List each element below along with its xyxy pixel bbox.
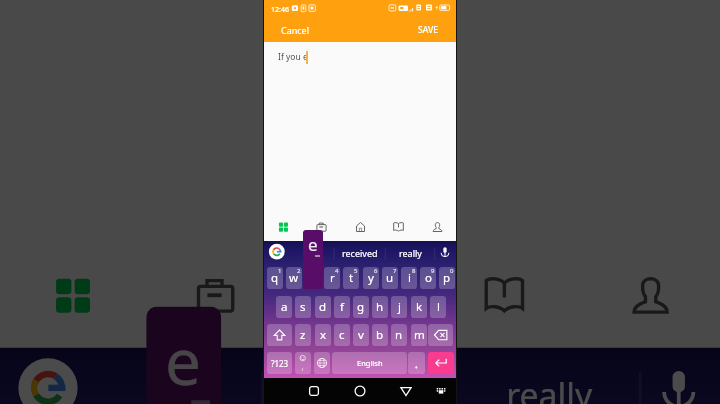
button[interactable]: Profile — [577, 243, 720, 340]
button[interactable]: Work — [142, 243, 285, 340]
button[interactable]: g — [353, 296, 369, 318]
staticText: b — [376, 327, 384, 343]
button[interactable]: n — [391, 324, 407, 346]
button[interactable]: a — [276, 296, 292, 318]
button[interactable]: Home — [289, 243, 431, 340]
staticText: received — [292, 370, 427, 404]
staticText: n — [395, 327, 403, 343]
staticText: l — [437, 299, 440, 315]
staticText: w — [289, 270, 299, 286]
button[interactable]: Back — [393, 378, 419, 404]
button[interactable]: m — [411, 324, 427, 346]
button[interactable]: Apps — [0, 243, 142, 340]
staticText: e — [308, 233, 318, 256]
button[interactable]: f — [334, 296, 350, 318]
button[interactable]: Shift — [267, 324, 292, 346]
button[interactable]: v — [353, 324, 369, 346]
button[interactable]: p — [439, 267, 455, 289]
button[interactable]: o — [420, 267, 436, 289]
button[interactable]: Home — [347, 378, 373, 404]
button[interactable]: x — [315, 324, 331, 346]
button[interactable]: received — [336, 240, 384, 265]
button[interactable]: t — [343, 267, 359, 289]
staticText: f — [340, 299, 344, 315]
button[interactable]: z — [295, 324, 311, 346]
staticText: 12:46 — [271, 5, 289, 15]
button[interactable]: y — [363, 267, 379, 289]
staticText: r — [330, 270, 335, 286]
staticText: 5 — [354, 267, 358, 275]
staticText: 6 — [374, 267, 378, 275]
staticText: 7 — [393, 267, 397, 275]
button[interactable]: really — [386, 240, 434, 265]
staticText: h — [376, 299, 384, 315]
button[interactable]: Emoji — [295, 352, 311, 374]
button[interactable]: Note text — [264, 42, 456, 212]
staticText: g — [357, 299, 365, 315]
button[interactable]: ?123 — [267, 352, 292, 374]
staticText: s — [300, 299, 306, 315]
staticText: z — [300, 327, 306, 343]
staticText: y — [368, 270, 374, 286]
staticText: j — [398, 299, 401, 315]
button[interactable]: s — [295, 296, 311, 318]
staticText: 0 — [450, 267, 454, 275]
staticText: SAVE — [418, 24, 438, 36]
button[interactable]: Library — [379, 213, 417, 239]
staticText: 8 — [412, 267, 416, 275]
staticText: English — [357, 358, 383, 368]
button[interactable]: q — [267, 267, 283, 289]
staticText: c — [339, 327, 345, 343]
button[interactable]: u — [382, 267, 398, 289]
button[interactable]: Backspace — [428, 324, 453, 346]
staticText: v — [358, 327, 364, 343]
button[interactable]: w — [286, 267, 302, 289]
button[interactable]: Home — [341, 213, 379, 239]
staticText: m — [414, 327, 425, 343]
button[interactable]: Work — [302, 213, 340, 239]
button[interactable]: SAVE — [410, 20, 446, 40]
button[interactable]: i — [401, 267, 417, 289]
button[interactable]: Library — [431, 243, 574, 340]
button[interactable]: received — [270, 344, 450, 404]
staticText: 9 — [431, 267, 435, 275]
staticText: i — [408, 270, 411, 286]
button[interactable]: English — [332, 352, 407, 374]
button[interactable]: Period — [408, 352, 425, 374]
staticText: q — [271, 270, 279, 286]
staticText: a — [281, 299, 288, 315]
staticText: e — [165, 318, 202, 404]
button[interactable]: really — [457, 344, 637, 404]
button[interactable]: l — [430, 296, 446, 318]
staticText: 2 — [297, 267, 301, 275]
button[interactable]: b — [372, 324, 388, 346]
button[interactable]: j — [391, 296, 407, 318]
staticText: d — [319, 299, 327, 315]
staticText: Cancel — [281, 24, 310, 36]
button[interactable]: d — [315, 296, 331, 318]
staticText: ?123 — [271, 358, 289, 369]
button[interactable]: r — [324, 267, 340, 289]
button[interactable]: Enter — [428, 352, 454, 374]
staticText: p — [443, 270, 451, 286]
staticText: t — [349, 270, 354, 286]
button[interactable]: Hide keyboard — [428, 378, 454, 404]
button[interactable]: k — [411, 296, 427, 318]
button[interactable]: Language — [314, 352, 330, 374]
staticText: really — [399, 247, 422, 259]
button[interactable]: Cancel — [274, 20, 316, 40]
button[interactable]: h — [372, 296, 388, 318]
staticText: k — [416, 299, 423, 315]
staticText: x — [320, 327, 327, 343]
staticText: o — [425, 270, 432, 286]
staticText: really — [506, 370, 593, 404]
button[interactable]: Note text — [0, 0, 720, 239]
staticText: 4 — [335, 267, 339, 275]
button[interactable]: Profile — [418, 213, 456, 239]
staticText: u — [386, 270, 394, 286]
button[interactable]: c — [334, 324, 350, 346]
button[interactable]: Apps — [264, 213, 302, 239]
button[interactable]: Recents — [301, 378, 327, 404]
